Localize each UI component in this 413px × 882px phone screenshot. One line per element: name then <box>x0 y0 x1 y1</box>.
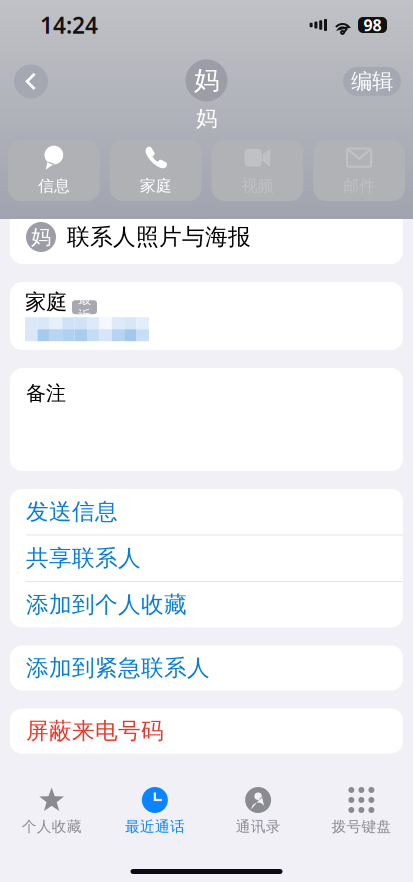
button[interactable]: 编辑 <box>343 67 401 96</box>
button[interactable]: 屏蔽来电号码 <box>10 708 403 753</box>
button[interactable]: Back <box>14 64 48 98</box>
staticText: 联系人照片与海报 <box>67 223 251 251</box>
button[interactable]: 视频 <box>211 140 303 201</box>
staticText: 家庭 <box>25 289 67 315</box>
button[interactable]: 家庭 <box>110 140 202 201</box>
button[interactable]: 信息 <box>8 140 100 201</box>
staticText: 视频 <box>241 176 273 196</box>
button[interactable]: 添加到紧急联系人 <box>10 645 403 690</box>
staticText: 最近 <box>78 291 91 324</box>
staticText: 最近通话 <box>125 817 185 835</box>
staticText: 发送信息 <box>26 498 118 526</box>
button[interactable]: 邮件 <box>313 140 405 201</box>
button[interactable]: 发送信息 <box>10 489 403 534</box>
staticText: 通讯录 <box>236 817 281 835</box>
staticText: 邮件 <box>343 176 375 196</box>
staticText: 妈 <box>196 105 217 132</box>
button[interactable]: 妈 <box>10 210 403 264</box>
staticText: 妈 <box>194 65 219 96</box>
staticText: 个人收藏 <box>22 817 82 835</box>
staticText: 妈 <box>31 225 51 249</box>
button[interactable]: 个人收藏 <box>0 783 103 839</box>
staticText: 家庭 <box>140 176 172 196</box>
staticText: 添加到个人收藏 <box>26 591 187 619</box>
staticText: 共享联系人 <box>26 544 141 572</box>
staticText: 拨号键盘 <box>331 817 391 835</box>
button[interactable]: 共享联系人 <box>10 535 403 581</box>
staticText: 屏蔽来电号码 <box>26 717 164 745</box>
staticText: 信息 <box>38 176 70 196</box>
button[interactable]: 通讯录 <box>206 783 310 839</box>
button[interactable]: 家庭 <box>10 282 403 350</box>
staticText: 添加到紧急联系人 <box>26 654 210 682</box>
staticText: 编辑 <box>351 68 393 94</box>
staticText: 14:24 <box>40 10 98 40</box>
button[interactable]: 最近通话 <box>103 783 206 839</box>
button[interactable]: 添加到个人收藏 <box>10 582 403 627</box>
button[interactable]: 拨号键盘 <box>310 783 413 839</box>
staticText: 备注 <box>26 381 66 406</box>
staticText: 98 <box>363 14 381 36</box>
